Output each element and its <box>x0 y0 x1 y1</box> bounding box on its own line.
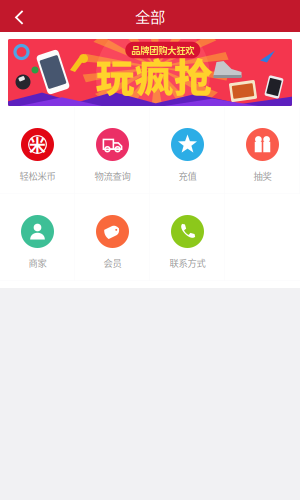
button[interactable]: 抽奖 <box>225 107 300 194</box>
button[interactable]: 米 <box>0 107 75 194</box>
staticText: 抽奖 <box>253 169 271 182</box>
staticText: 充值 <box>178 169 196 182</box>
staticText: 会员 <box>103 256 121 269</box>
button[interactable]: 联系方式 <box>150 194 225 281</box>
button[interactable]: 物流查询 <box>75 107 150 194</box>
staticText: 联系方式 <box>169 256 205 269</box>
staticText: 品牌团购大狂欢 <box>131 43 194 57</box>
button[interactable]: Back <box>0 0 34 32</box>
staticText: 商家 <box>28 256 46 269</box>
button[interactable]: 充值 <box>150 107 225 194</box>
button[interactable]: 商家 <box>0 194 75 281</box>
button[interactable]: 会员 <box>75 194 150 281</box>
staticText: 全部 <box>135 5 165 27</box>
staticText: 物流查询 <box>94 169 130 182</box>
staticText: 轻松米币 <box>19 169 55 182</box>
staticText: 玩疯抢 <box>96 47 213 103</box>
staticText: 米 <box>29 132 46 157</box>
